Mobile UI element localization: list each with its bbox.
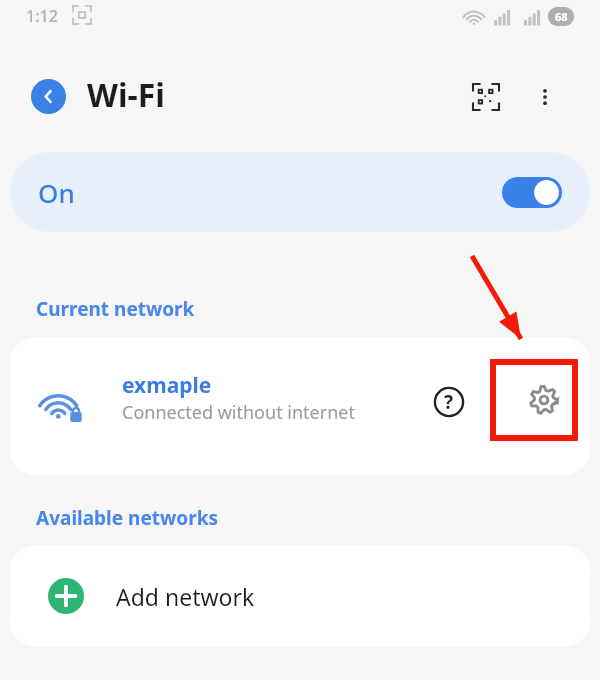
staticText: 68 (555, 9, 568, 24)
staticText: Current network (36, 296, 195, 322)
staticText: Available networks (36, 505, 218, 531)
button[interactable]: On (10, 152, 590, 232)
button[interactable]: Help (425, 378, 473, 426)
button[interactable]: Scan QR code (466, 77, 506, 117)
staticText: On (38, 175, 75, 210)
button[interactable]: Network settings (520, 376, 568, 424)
button[interactable]: Add network (10, 545, 590, 647)
button[interactable]: More options (525, 77, 565, 117)
button[interactable]: Back (31, 79, 66, 114)
staticText: Wi-Fi (87, 73, 165, 117)
staticText: exmaple (122, 371, 212, 400)
staticText: 1:12 (26, 5, 58, 27)
staticText: Add network (116, 581, 255, 612)
button[interactable]: exmaple (10, 337, 590, 475)
staticText: Connected without internet (122, 400, 355, 425)
staticText: ? (444, 389, 454, 415)
